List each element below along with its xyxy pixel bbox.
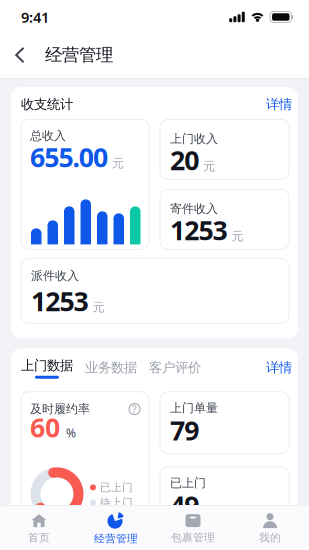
staticText: 经营管理 (45, 44, 113, 66)
button[interactable]: 包裹管理 (154, 508, 231, 550)
staticText: 上门数据 (21, 357, 73, 374)
staticText: 1253 (170, 212, 228, 247)
staticText: 20 (170, 142, 199, 177)
staticText: 详情 (266, 96, 292, 112)
staticText: 元 (203, 159, 215, 173)
button[interactable]: 详情 (263, 357, 289, 376)
button[interactable]: 我的 (231, 508, 308, 550)
staticText: 49 (170, 487, 199, 523)
button[interactable]: 客户评价 (137, 357, 201, 376)
button[interactable]: 业务数据 (73, 357, 137, 376)
staticText: 元 (93, 300, 105, 314)
staticText: % (66, 425, 76, 441)
button[interactable]: Back (0, 47, 26, 63)
staticText: 上门收入 (170, 131, 218, 146)
staticText: 总收入 (30, 128, 66, 143)
staticText: 元 (112, 156, 124, 170)
staticText: 655.00 (30, 139, 108, 174)
button[interactable]: Help (129, 402, 140, 416)
staticText: 业务数据 (85, 359, 137, 376)
staticText: 经营管理 (94, 532, 138, 545)
button[interactable]: 上门数据 (21, 357, 73, 379)
staticText: 60 (30, 409, 60, 445)
staticText: 1253 (31, 283, 89, 318)
button[interactable]: 经营管理 (77, 508, 154, 550)
staticText: 已上门 (100, 481, 133, 494)
staticText: 及时履约率 (30, 402, 90, 416)
staticText: 首页 (28, 531, 50, 544)
button[interactable]: 详情 (263, 96, 289, 112)
staticText: 79 (170, 412, 199, 448)
staticText: 元 (232, 229, 244, 243)
staticText: 寄件收入 (170, 201, 218, 216)
staticText: 收支统计 (21, 96, 73, 112)
button[interactable]: 首页 (0, 508, 77, 550)
staticText: 上门单量 (170, 401, 218, 415)
staticText: 客户评价 (149, 359, 201, 376)
staticText: 我的 (259, 531, 281, 544)
staticText: 包裹管理 (171, 531, 215, 544)
staticText: 详情 (266, 359, 292, 376)
staticText: ? (132, 402, 137, 416)
staticText: 待上门 (100, 496, 133, 509)
staticText: 9:41 (21, 7, 49, 27)
staticText: 派件收入 (31, 268, 79, 283)
staticText: 已上门 (170, 476, 206, 490)
